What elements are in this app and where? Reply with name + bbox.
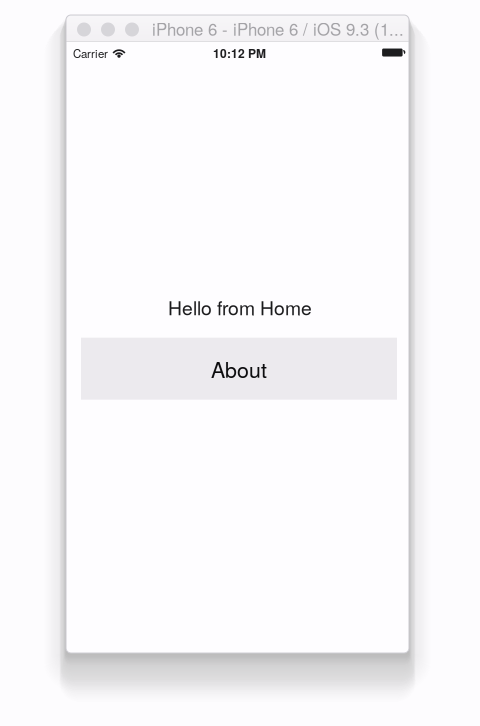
button[interactable]: Minimize window: [101, 22, 115, 36]
button[interactable]: Zoom window: [125, 22, 139, 36]
staticText: Carrier: [73, 45, 108, 61]
staticText: About: [211, 353, 267, 384]
button[interactable]: Close window: [77, 22, 91, 36]
staticText: Hello from Home: [168, 293, 312, 321]
button[interactable]: About: [81, 338, 397, 400]
staticText: iPhone 6 - iPhone 6 / iOS 9.3 (1...: [152, 16, 404, 41]
staticText: 10:12 PM: [213, 44, 266, 62]
